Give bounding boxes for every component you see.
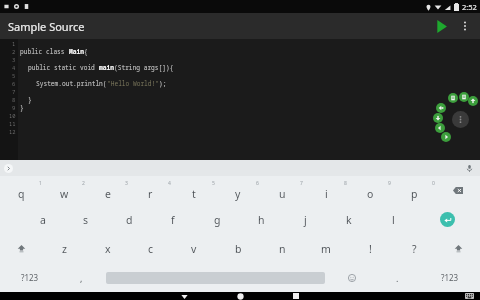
- staticText: t: [192, 187, 196, 201]
- staticText: {: [84, 47, 88, 55]
- staticText: c: [148, 242, 154, 256]
- staticText: 5: [212, 180, 215, 187]
- button[interactable]: Back: [175, 292, 193, 300]
- button[interactable]: j: [283, 213, 327, 227]
- staticText: ?: [412, 242, 417, 256]
- staticText: main: [99, 63, 114, 71]
- staticText: 6: [12, 80, 16, 87]
- staticText: m: [321, 242, 331, 256]
- button[interactable]: s: [64, 213, 107, 227]
- button[interactable]: Home: [231, 292, 249, 300]
- staticText: 5: [12, 72, 16, 79]
- staticText: 2: [12, 48, 16, 55]
- button[interactable]: 2: [43, 180, 86, 201]
- button[interactable]: More options: [454, 15, 476, 37]
- button[interactable]: 5: [172, 180, 216, 201]
- button[interactable]: ?123: [419, 272, 480, 283]
- staticText: System.out.println(: [36, 79, 107, 87]
- staticText: l: [392, 213, 395, 227]
- staticText: 6: [256, 180, 259, 187]
- staticText: Sample Source: [8, 19, 85, 34]
- button[interactable]: k: [327, 213, 371, 227]
- button[interactable]: ?123: [0, 272, 60, 283]
- button[interactable]: 3: [86, 180, 129, 201]
- staticText: x: [105, 242, 111, 256]
- staticText: public class: [20, 47, 69, 55]
- button[interactable]: Move down: [433, 113, 443, 123]
- button[interactable]: Menu: [452, 111, 469, 128]
- staticText: 8: [12, 96, 16, 103]
- button[interactable]: Switch keyboard: [462, 292, 476, 300]
- staticText: public static void: [28, 63, 99, 71]
- staticText: 8: [344, 180, 347, 187]
- button[interactable]: Emoji: [328, 274, 376, 282]
- button[interactable]: Run: [428, 13, 454, 39]
- button[interactable]: 6: [216, 180, 260, 201]
- staticText: 10: [9, 112, 16, 119]
- button[interactable]: Move right: [441, 132, 451, 142]
- staticText: a: [40, 213, 46, 227]
- button[interactable]: Cut: [436, 103, 446, 113]
- staticText: 3: [12, 56, 16, 63]
- button[interactable]: f: [151, 213, 195, 227]
- button[interactable]: Enter: [415, 212, 480, 227]
- staticText: y: [235, 187, 241, 201]
- button[interactable]: a: [21, 213, 64, 227]
- button[interactable]: 0: [392, 180, 436, 201]
- button[interactable]: c: [129, 242, 172, 256]
- button[interactable]: Copy: [459, 92, 469, 102]
- button[interactable]: Recents: [287, 292, 305, 300]
- button[interactable]: x: [86, 242, 129, 256]
- staticText: f: [171, 213, 175, 227]
- button[interactable]: l: [371, 213, 415, 227]
- button[interactable]: h: [239, 213, 283, 227]
- staticText: 3: [125, 180, 128, 187]
- button[interactable]: Shift: [0, 244, 43, 253]
- staticText: e: [105, 187, 111, 201]
- staticText: }: [28, 95, 32, 103]
- button[interactable]: b: [216, 242, 260, 256]
- button[interactable]: Paste: [448, 93, 458, 103]
- button[interactable]: 9: [348, 180, 392, 201]
- staticText: .: [396, 272, 399, 284]
- staticText: (String args[]){: [114, 63, 174, 71]
- button[interactable]: Backspace: [436, 187, 480, 194]
- staticText: ,: [80, 272, 83, 284]
- button[interactable]: ?: [392, 242, 436, 256]
- staticText: n: [279, 242, 286, 256]
- button[interactable]: d: [107, 213, 151, 227]
- staticText: b: [235, 242, 242, 256]
- staticText: i: [325, 187, 328, 201]
- button[interactable]: g: [195, 213, 239, 227]
- button[interactable]: n: [260, 242, 304, 256]
- staticText: 2: [82, 180, 85, 187]
- button[interactable]: Move left: [435, 123, 445, 133]
- button[interactable]: 1: [0, 180, 43, 201]
- button[interactable]: Shift: [436, 244, 480, 253]
- button[interactable]: 8: [304, 180, 348, 201]
- staticText: "Hello World!": [107, 79, 159, 87]
- button[interactable]: Expand suggestions: [2, 162, 14, 174]
- staticText: 1: [12, 40, 16, 47]
- button[interactable]: !: [348, 242, 392, 256]
- button[interactable]: m: [304, 242, 348, 256]
- button[interactable]: v: [172, 242, 216, 256]
- button[interactable]: z: [43, 242, 86, 256]
- staticText: p: [411, 187, 418, 201]
- staticText: 9: [388, 180, 391, 187]
- staticText: k: [346, 213, 352, 227]
- staticText: 7: [12, 88, 16, 95]
- staticText: 11: [9, 120, 16, 127]
- button[interactable]: 7: [260, 180, 304, 201]
- staticText: v: [191, 242, 197, 256]
- button[interactable]: 4: [129, 180, 172, 201]
- button[interactable]: Voice input: [463, 162, 476, 175]
- button[interactable]: Move up: [468, 96, 478, 106]
- staticText: 0: [432, 180, 435, 187]
- staticText: j: [304, 213, 307, 227]
- staticText: q: [18, 187, 25, 201]
- button[interactable]: ,: [60, 272, 103, 284]
- staticText: w: [60, 187, 69, 201]
- button[interactable]: .: [376, 272, 419, 284]
